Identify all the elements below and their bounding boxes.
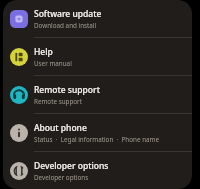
other: About phone xyxy=(10,124,28,142)
other: Remote support xyxy=(10,86,28,104)
staticText: Developer options xyxy=(34,160,109,172)
other: Software update xyxy=(10,10,28,28)
staticText: About phone xyxy=(34,122,87,134)
other: Help xyxy=(10,48,28,66)
button[interactable]: Help xyxy=(3,38,192,75)
button[interactable]: Software update xyxy=(3,0,192,37)
staticText: User manual xyxy=(34,59,72,68)
staticText: Status · Legal information · Phone name xyxy=(34,135,159,144)
button[interactable]: Remote support xyxy=(3,76,192,113)
other: Developer options xyxy=(10,162,28,180)
staticText: Remote support xyxy=(34,84,100,96)
staticText: Remote support xyxy=(34,97,82,106)
staticText: Help xyxy=(34,46,53,58)
button[interactable]: Developer options xyxy=(3,152,192,189)
button[interactable]: About phone xyxy=(3,114,192,151)
staticText: Developer options xyxy=(34,173,89,182)
staticText: Download and install xyxy=(34,21,97,30)
staticText: Software update xyxy=(34,8,102,20)
